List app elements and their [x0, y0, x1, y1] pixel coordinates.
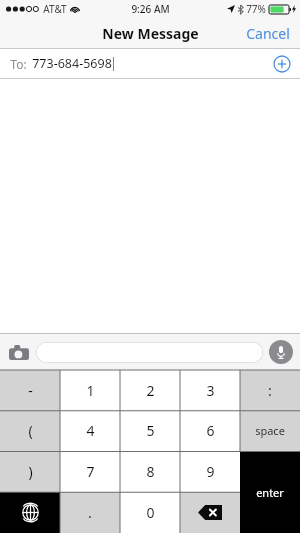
staticText: . — [88, 503, 92, 522]
staticText: enter — [256, 485, 284, 500]
staticText: To: — [10, 56, 27, 72]
button[interactable]: 5 — [120, 410, 180, 451]
button[interactable]: 8 — [120, 451, 180, 492]
staticText: 2 — [146, 381, 155, 400]
staticText: 4 — [86, 421, 95, 440]
staticText: ) — [28, 462, 33, 481]
button[interactable]: 6 — [180, 410, 240, 451]
button[interactable]: To: — [0, 49, 300, 78]
button[interactable]: 3 — [180, 370, 240, 410]
staticText: New Message — [102, 24, 199, 43]
staticText: 5 — [146, 421, 155, 440]
staticText: space — [255, 423, 285, 438]
staticText: - — [28, 381, 33, 400]
button[interactable]: Add contact — [273, 55, 291, 73]
button[interactable]: Backspace — [180, 492, 240, 533]
button[interactable]: 4 — [60, 410, 120, 451]
staticText: 7 — [86, 462, 95, 481]
button[interactable]: Camera — [7, 340, 31, 364]
button[interactable]: Change keyboard — [0, 492, 60, 533]
staticText: 8 — [146, 462, 155, 481]
button[interactable] — [36, 342, 263, 363]
button[interactable]: . — [60, 492, 120, 533]
button[interactable]: Dictate — [269, 340, 293, 364]
button[interactable]: 9 — [180, 451, 240, 492]
staticText: 9:26 AM — [131, 2, 170, 16]
button[interactable]: : — [240, 370, 300, 410]
button[interactable]: enter — [240, 451, 300, 533]
button[interactable]: 7 — [60, 451, 120, 492]
button[interactable]: ) — [0, 451, 60, 492]
staticText: ( — [28, 421, 33, 440]
staticText: 1 — [86, 381, 95, 400]
button[interactable]: ( — [0, 410, 60, 451]
button[interactable]: Cancel — [236, 20, 300, 47]
staticText: 77% — [246, 2, 266, 16]
staticText: 3 — [206, 381, 215, 400]
staticText: 773-684-5698 — [32, 55, 112, 72]
staticText: : — [268, 381, 272, 400]
button[interactable]: 0 — [120, 492, 180, 533]
button[interactable]: - — [0, 370, 60, 410]
button[interactable]: space — [240, 410, 300, 451]
staticText: AT&T — [43, 2, 67, 16]
staticText: 0 — [146, 503, 155, 522]
staticText: 9 — [206, 462, 215, 481]
staticText: 6 — [206, 421, 215, 440]
staticText: Cancel — [246, 24, 290, 43]
button[interactable]: 2 — [120, 370, 180, 410]
button[interactable]: 1 — [60, 370, 120, 410]
